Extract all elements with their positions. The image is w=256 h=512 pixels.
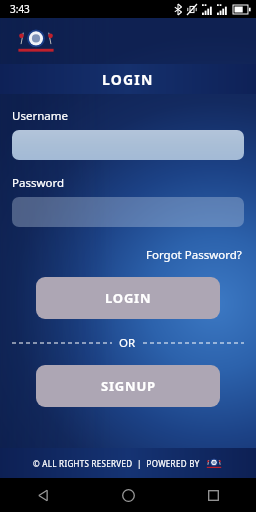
- staticText: 3:43: [10, 2, 30, 16]
- button[interactable]: Forgot Password?: [144, 245, 244, 265]
- button[interactable]: [12, 130, 244, 160]
- staticText: Password: [12, 175, 65, 191]
- staticText: LOGIN: [102, 70, 154, 89]
- staticText: Forgot Password?: [146, 247, 242, 263]
- staticText: OR: [119, 335, 136, 351]
- staticText: © ALL RIGHTS RESERVED | POWERED BY: [33, 458, 200, 469]
- button[interactable]: LOGIN: [36, 277, 220, 319]
- button[interactable]: Home: [86, 478, 171, 512]
- button[interactable]: Recents: [171, 478, 256, 512]
- staticText: LOGIN: [105, 289, 152, 307]
- button[interactable]: [12, 197, 244, 227]
- button[interactable]: Back: [0, 478, 86, 512]
- staticText: Username: [12, 108, 68, 124]
- staticText: SIGNUP: [101, 377, 156, 395]
- button[interactable]: SIGNUP: [36, 365, 220, 407]
